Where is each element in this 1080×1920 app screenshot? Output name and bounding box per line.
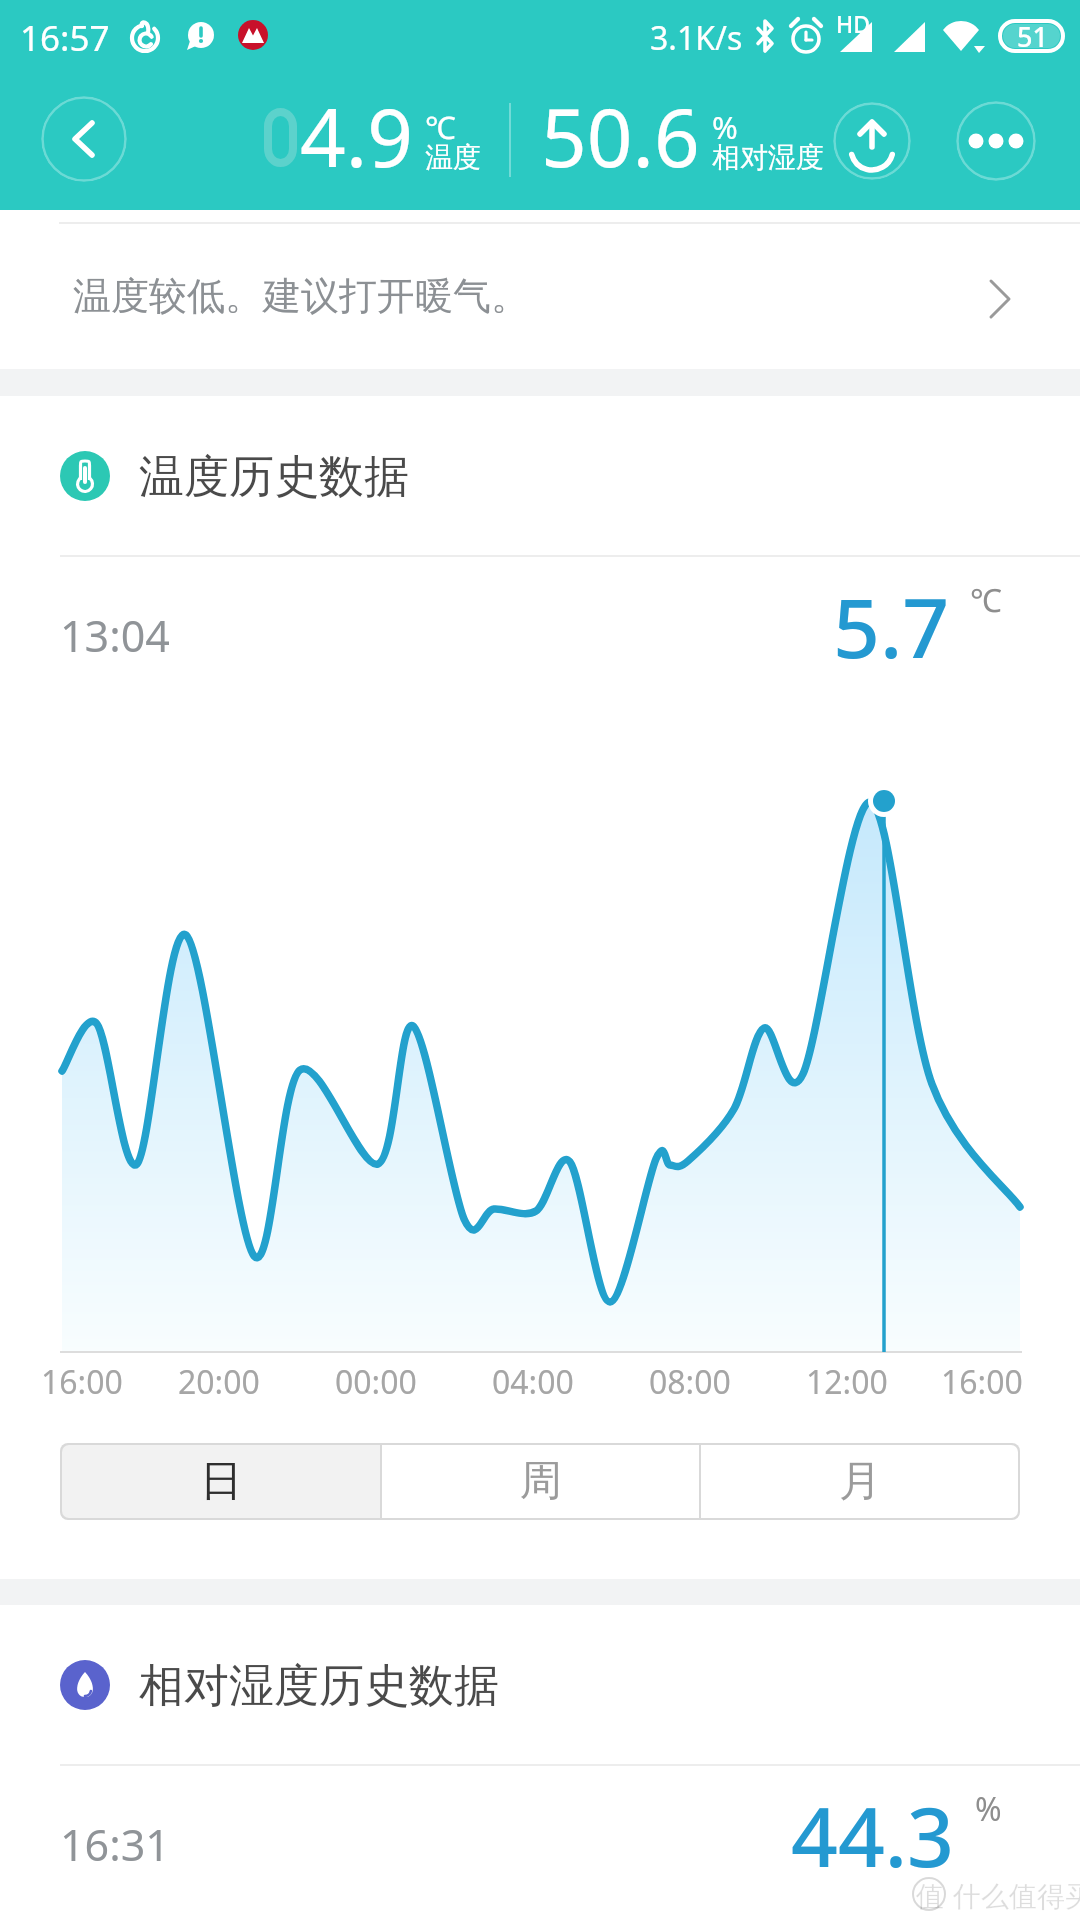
staticText: 00:00 bbox=[335, 1360, 417, 1404]
button[interactable]: 温度历史数据 bbox=[0, 437, 1080, 515]
button[interactable]: 温度较低。建议打开暖气。 bbox=[0, 210, 1080, 369]
staticText: 20:00 bbox=[178, 1360, 260, 1404]
staticText: ℃ bbox=[425, 106, 456, 148]
staticText: 04:00 bbox=[492, 1360, 574, 1404]
staticText: 13:04 bbox=[60, 606, 170, 665]
staticText: 51 bbox=[1017, 18, 1048, 55]
staticText: 什么值得买 bbox=[953, 1879, 1080, 1914]
staticText: 周 bbox=[520, 1455, 562, 1508]
button[interactable]: 相对湿度历史数据 bbox=[0, 1646, 1080, 1724]
staticText: 日 bbox=[200, 1455, 242, 1508]
staticText: 相对湿度历史数据 bbox=[139, 1658, 499, 1715]
staticText: 温度较低。建议打开暖气。 bbox=[73, 272, 529, 320]
staticText: 44.3 bbox=[791, 1779, 955, 1871]
button[interactable]: 50.6 bbox=[541, 81, 824, 185]
button[interactable]: Back bbox=[41, 96, 127, 182]
button[interactable]: Power bbox=[833, 102, 911, 180]
staticText: HD bbox=[836, 8, 871, 39]
staticText: ℃ bbox=[970, 578, 1002, 622]
button[interactable]: 周 bbox=[382, 1445, 699, 1518]
staticText: 50.6 bbox=[541, 81, 700, 185]
staticText: 16:57 bbox=[20, 14, 110, 62]
staticText: 16:31 bbox=[60, 1815, 170, 1874]
staticText: 温度 bbox=[425, 140, 481, 175]
staticText: 08:00 bbox=[649, 1360, 731, 1404]
staticText: 值 bbox=[916, 1879, 944, 1914]
staticText: 温度历史数据 bbox=[139, 449, 409, 506]
button[interactable]: More options bbox=[956, 101, 1036, 181]
staticText: 3.1K/s bbox=[650, 16, 743, 60]
staticText: 相对湿度 bbox=[712, 140, 824, 175]
button[interactable]: 月 bbox=[701, 1445, 1018, 1518]
staticText: 16:00 bbox=[941, 1360, 1023, 1404]
staticText: 5.7 bbox=[833, 570, 950, 662]
staticText: 16:00 bbox=[41, 1360, 123, 1404]
button[interactable]: 日 bbox=[62, 1445, 380, 1518]
button[interactable]: 4.9 bbox=[259, 81, 481, 185]
staticText: 4.9 bbox=[300, 81, 413, 185]
staticText: % bbox=[712, 106, 738, 148]
staticText: 12:00 bbox=[806, 1360, 888, 1404]
staticText: 月 bbox=[839, 1455, 881, 1508]
staticText: % bbox=[975, 1787, 1002, 1831]
